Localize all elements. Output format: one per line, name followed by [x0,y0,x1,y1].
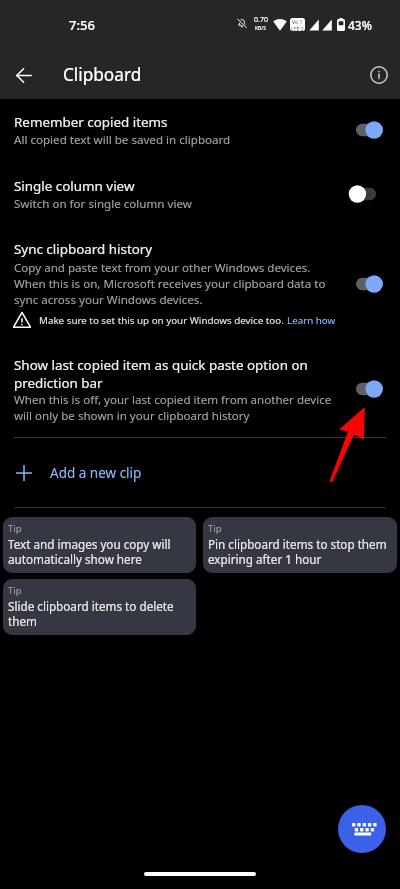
staticText: Text and images you copy will automatica… [8,536,171,567]
staticText: When this is on, Microsoft receives your… [14,276,326,292]
staticText: All copied text will be saved in clipboa… [14,132,231,148]
staticText: will only be shown in your clipboard his… [14,408,250,424]
button[interactable]: Remember copied items [0,113,400,146]
staticText: Pin clipboard items to stop them expirin… [208,536,387,567]
button[interactable]: Toggle off [348,183,384,205]
button[interactable]: Show last copied item as quick paste opt… [0,356,400,421]
staticText: Remember copied items [14,113,168,131]
button[interactable]: Info [355,51,400,99]
staticText: When this is off, your last copied item … [14,392,332,408]
button[interactable]: Open keyboard [338,805,386,853]
staticText: 7:56 [69,16,95,34]
button[interactable]: Learn how [287,314,336,327]
button[interactable]: Tip [3,579,196,635]
staticText: Make sure to set this up on your Windows… [39,314,284,327]
button[interactable]: Add a new clip [0,438,400,507]
button[interactable]: Toggle on [348,273,384,295]
staticText: prediction bar [14,374,103,392]
staticText: Vo 1 [292,18,303,25]
staticText: Switch on for single column view [14,196,192,212]
staticText: Clipboard [63,63,142,86]
staticText: Slide clipboard items to delete them [8,598,174,629]
button[interactable]: Tip [3,517,196,573]
button[interactable]: Single column view [0,177,400,210]
staticText: 43% [348,17,372,33]
button[interactable]: Toggle on [348,119,384,141]
staticText: sync across your Windows devices. [14,292,203,308]
button[interactable]: Tip [203,517,397,573]
button[interactable]: Sync clipboard history [0,240,400,303]
staticText: Show last copied item as quick paste opt… [14,356,308,374]
button[interactable]: Back [0,51,48,99]
staticText: LTE 2 [291,25,304,31]
staticText: Copy and paste text from your other Wind… [14,260,311,276]
staticText: Tip [208,522,222,535]
staticText: 0.70 [254,15,268,25]
staticText: Tip [8,584,22,597]
staticText: Tip [8,522,22,535]
staticText: Sync clipboard history [14,240,153,258]
button[interactable]: Toggle on [348,378,384,400]
staticText: Add a new clip [50,464,142,482]
staticText: Learn how [287,314,336,327]
staticText: Single column view [14,177,135,195]
staticText: KB/S [255,25,266,32]
